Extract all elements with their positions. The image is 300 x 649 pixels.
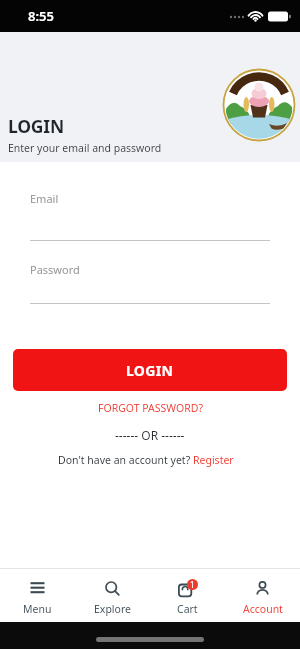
staticText: 1 xyxy=(190,579,195,590)
staticText: 8:55 xyxy=(28,7,54,25)
staticText: Account xyxy=(243,602,283,616)
staticText: Menu xyxy=(23,602,52,616)
button[interactable]: Explore xyxy=(75,569,150,622)
button[interactable]: Account xyxy=(225,569,300,622)
button[interactable]: FORGOT PASSWORD? xyxy=(98,401,203,415)
button[interactable]: Register xyxy=(193,453,234,467)
button[interactable]: LOGIN xyxy=(13,349,287,391)
staticText: Cart xyxy=(177,602,198,616)
staticText: Email xyxy=(30,191,59,206)
staticText: ------ OR ------ xyxy=(115,427,185,443)
button[interactable]: Menu xyxy=(0,569,75,622)
button[interactable]: 1 xyxy=(150,569,225,622)
staticText: Password xyxy=(30,262,80,277)
staticText: Enter your email and password xyxy=(8,141,162,155)
staticText: LOGIN xyxy=(126,361,174,380)
staticText: Don't have an account yet? xyxy=(58,453,191,467)
staticText: Explore xyxy=(94,602,131,616)
staticText: FORGOT PASSWORD? xyxy=(98,401,203,415)
staticText: LOGIN xyxy=(8,114,64,138)
staticText: Register xyxy=(193,453,234,467)
